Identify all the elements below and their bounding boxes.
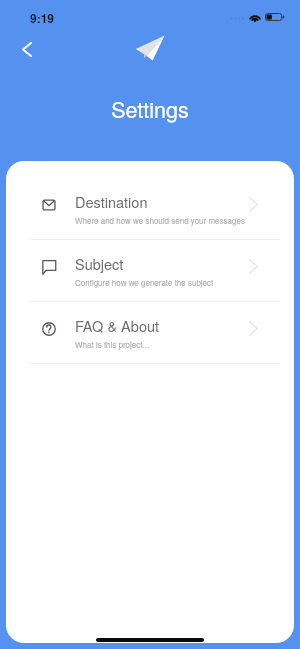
- staticText: Destination: [75, 191, 148, 212]
- staticText: Configure how we generate the subject: [75, 277, 214, 288]
- staticText: What is this project...: [75, 339, 150, 350]
- button[interactable]: Back: [7, 29, 47, 69]
- staticText: Where and how we should send your messag…: [75, 215, 245, 226]
- button[interactable]: FAQ & About: [6, 302, 294, 363]
- staticText: 9:19: [30, 9, 55, 26]
- staticText: Settings: [0, 93, 300, 124]
- button[interactable]: Subject: [6, 240, 294, 301]
- staticText: Subject: [75, 253, 124, 274]
- staticText: FAQ & About: [75, 315, 160, 336]
- button[interactable]: Destination: [6, 178, 294, 239]
